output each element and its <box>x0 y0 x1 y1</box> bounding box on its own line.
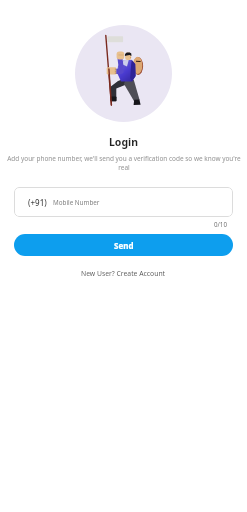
staticText: New User? Create Account <box>81 269 166 278</box>
button[interactable]: Send <box>14 234 233 256</box>
staticText: 0/10 <box>214 220 227 228</box>
staticText: Add your phone number, we'll send you a … <box>7 154 241 163</box>
staticText: Send <box>114 240 134 251</box>
staticText: Mobile Number <box>53 198 100 207</box>
button[interactable]: (+91) <box>14 187 233 217</box>
staticText: Login <box>109 135 139 149</box>
staticText: real <box>118 163 130 172</box>
staticText: (+91) <box>28 197 47 208</box>
button[interactable]: New User? Create Account <box>75 266 172 281</box>
